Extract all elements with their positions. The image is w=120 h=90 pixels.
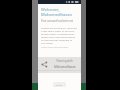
button[interactable]: Share <box>38 57 81 73</box>
staticText: Sharing with <box>56 59 73 63</box>
button[interactable]: Close <box>53 82 66 87</box>
staticText: Welcome, Mohamedhasan <box>41 7 78 17</box>
staticText: Your account has been set <box>41 19 74 23</box>
button[interactable]: Share <box>40 60 49 69</box>
staticText: Learn more about settings <box>41 46 69 49</box>
staticText: Close <box>56 83 63 86</box>
staticText: Thanks for joining us. Here are a few qu… <box>41 26 77 44</box>
staticText: Mohamedhasan <box>54 65 76 69</box>
